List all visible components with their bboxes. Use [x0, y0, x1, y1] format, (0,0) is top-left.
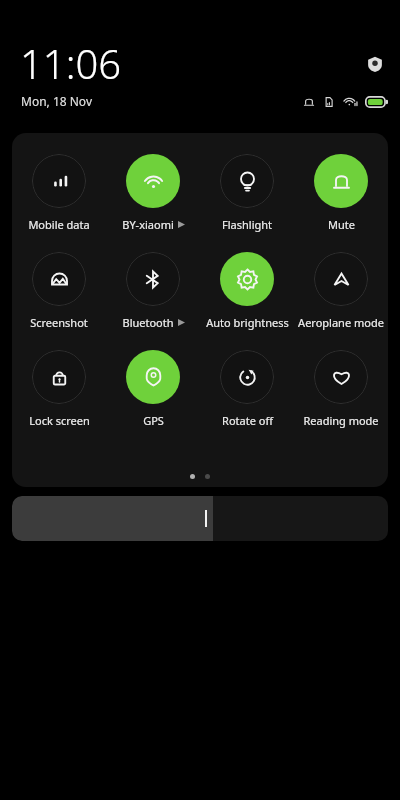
button[interactable]: Rotate off [200, 350, 294, 428]
staticText: Screenshot [30, 315, 88, 330]
button[interactable]: Mobile data [12, 154, 106, 232]
staticText: Mon, 18 Nov [21, 93, 92, 109]
staticText: Mobile data [28, 217, 90, 232]
button[interactable]: Mute [294, 154, 388, 232]
button[interactable]: Lock screen [12, 350, 106, 428]
staticText: Rotate off [222, 413, 273, 428]
staticText: Mute [328, 217, 355, 232]
staticText: Flashlight [222, 217, 272, 232]
button[interactable]: Screenshot [12, 252, 106, 330]
staticText: 11:06 [20, 36, 122, 90]
button[interactable]: BY-xiaomi [106, 154, 200, 232]
button[interactable]: Aeroplane mode [294, 252, 388, 330]
button[interactable]: Bluetooth [106, 252, 200, 330]
staticText: Bluetooth [122, 315, 174, 330]
button[interactable]: GPS [106, 350, 200, 428]
staticText: GPS [143, 413, 164, 428]
staticText: BY-xiaomi [122, 217, 174, 232]
staticText: Auto brightness [206, 315, 289, 330]
button[interactable]: Auto brightness [200, 252, 294, 330]
button[interactable]: Brightness [12, 496, 388, 541]
button[interactable]: Privacy indicator [365, 54, 385, 74]
staticText: Aeroplane mode [298, 315, 384, 330]
button[interactable]: Reading mode [294, 350, 388, 428]
staticText: Reading mode [303, 413, 379, 428]
button[interactable]: Flashlight [200, 154, 294, 232]
staticText: Lock screen [29, 413, 90, 428]
